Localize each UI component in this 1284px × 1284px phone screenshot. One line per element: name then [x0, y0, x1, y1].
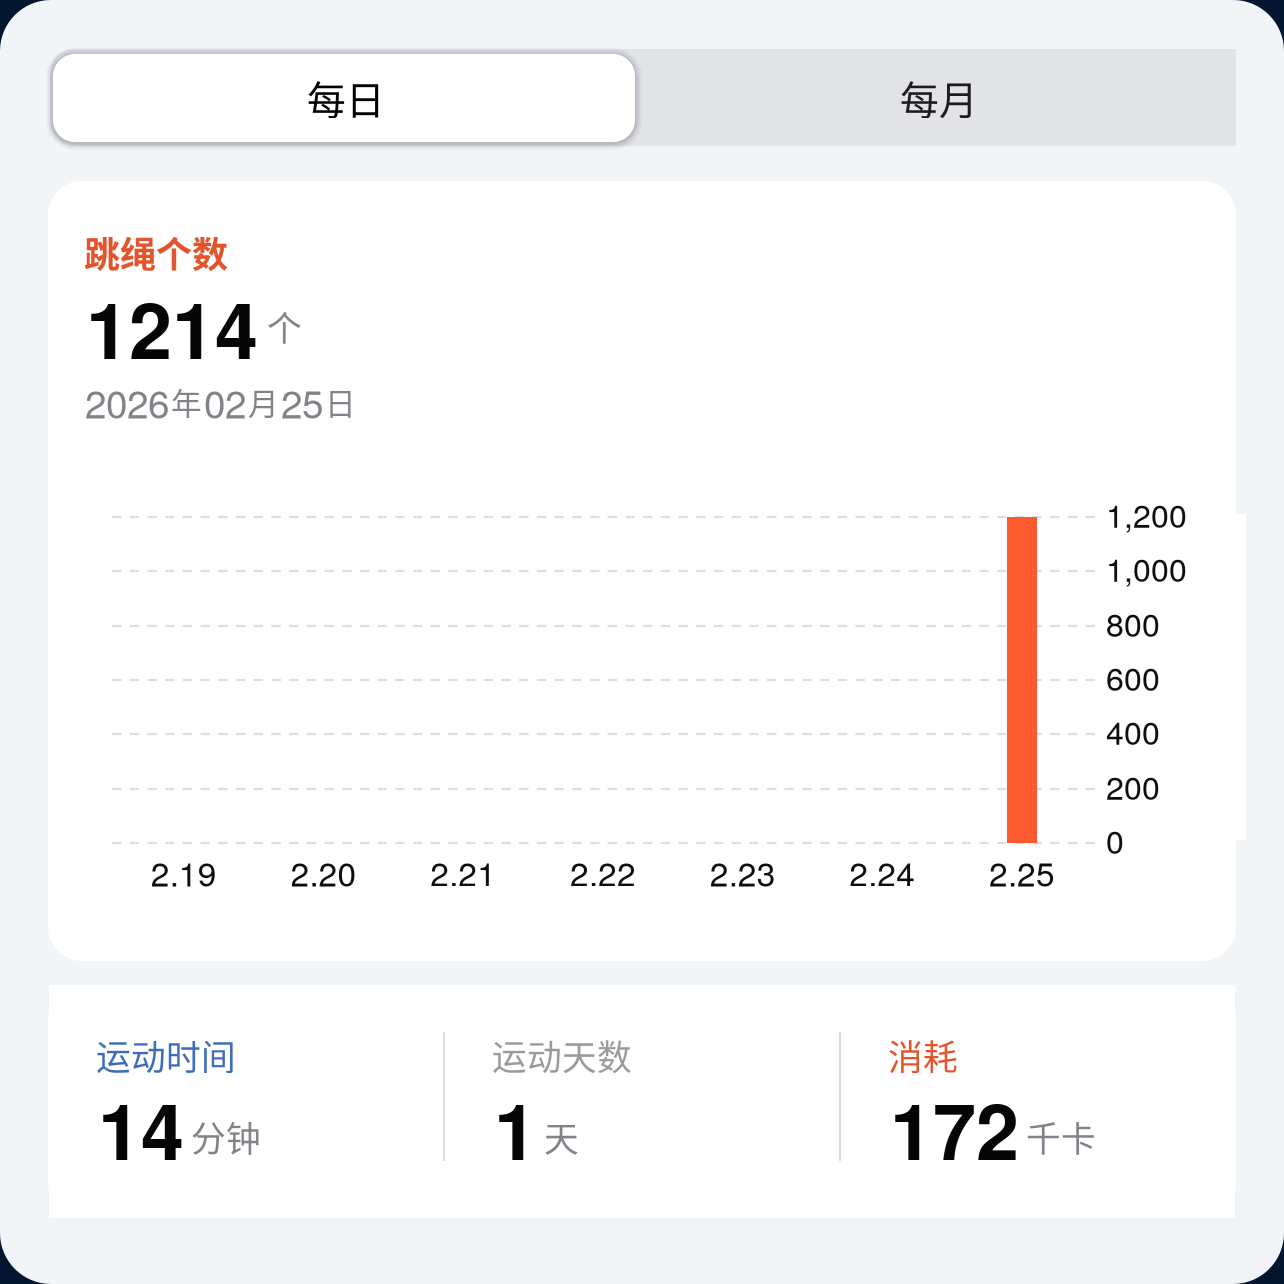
staticText: 消耗	[888, 1030, 958, 1080]
staticText: 运动时间	[96, 1030, 236, 1080]
staticText: 25	[281, 374, 323, 429]
button[interactable]: 每日	[50, 49, 642, 146]
staticText: 1,000	[1106, 545, 1187, 591]
staticText: 800	[1106, 600, 1160, 646]
staticText: 2026	[85, 374, 169, 429]
staticText: 年	[171, 379, 202, 424]
staticText: 月	[248, 379, 279, 424]
staticText: 2.21	[430, 848, 496, 896]
button[interactable]: 每月	[642, 49, 1236, 146]
staticText: 每日	[307, 69, 385, 125]
staticText: 172	[890, 1073, 1019, 1184]
staticText: 400	[1106, 708, 1160, 754]
staticText: 600	[1106, 654, 1160, 700]
staticText: 每月	[900, 69, 978, 125]
staticText: 02	[204, 374, 246, 429]
staticText: 200	[1106, 763, 1160, 809]
staticText: 2.25	[989, 848, 1055, 896]
staticText: 14	[98, 1073, 184, 1184]
staticText: 跳绳个数	[84, 226, 228, 278]
staticText: 2.19	[151, 848, 217, 896]
staticText: 2.22	[570, 848, 636, 896]
staticText: 运动天数	[492, 1030, 632, 1080]
staticText: 2.23	[710, 848, 776, 896]
staticText: 千卡	[1026, 1111, 1096, 1162]
staticText: 1214	[86, 272, 258, 383]
staticText: 日	[325, 379, 356, 424]
staticText: 0	[1106, 817, 1124, 863]
staticText: 天	[544, 1111, 579, 1162]
staticText: 1	[494, 1073, 537, 1184]
staticText: 1,200	[1106, 491, 1187, 537]
staticText: 2.24	[849, 848, 915, 896]
staticText: 分钟	[191, 1111, 261, 1162]
staticText: 2.20	[290, 848, 356, 896]
staticText: 个	[267, 301, 302, 352]
